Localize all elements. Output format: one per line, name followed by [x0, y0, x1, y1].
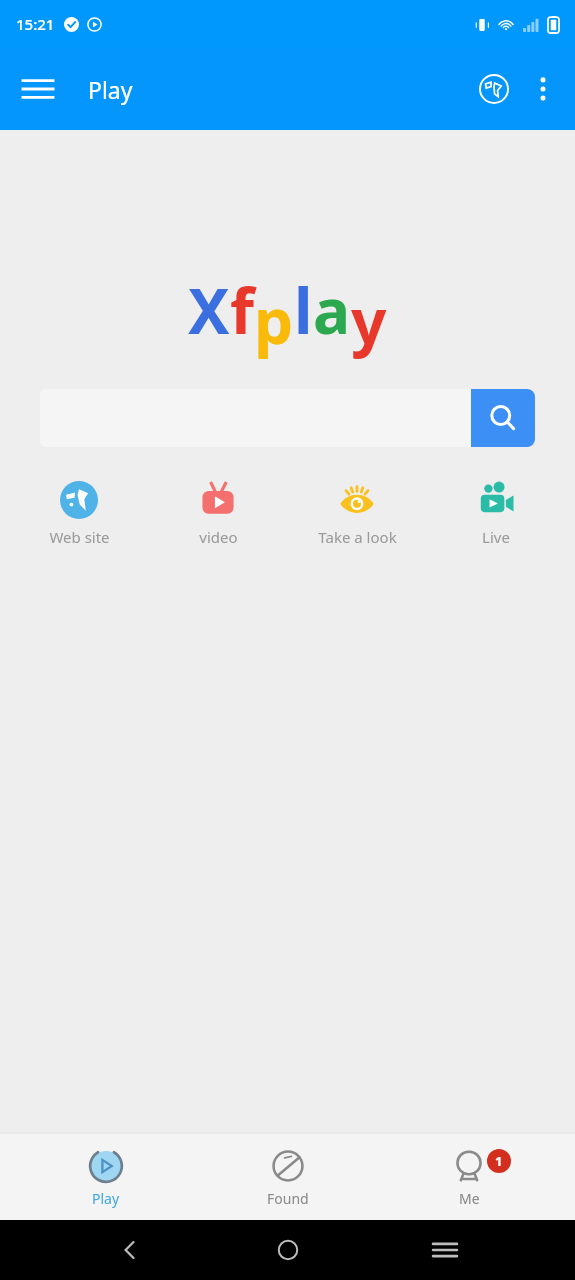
- button[interactable]: Web site: [14, 475, 144, 551]
- button[interactable]: Live: [431, 475, 561, 551]
- button[interactable]: Take a look: [292, 475, 422, 551]
- staticText: Web site: [49, 527, 110, 547]
- button[interactable]: Search: [471, 389, 535, 447]
- staticText: Play: [88, 74, 133, 105]
- staticText: y: [351, 278, 387, 362]
- button[interactable]: video: [153, 475, 283, 551]
- staticText: X: [188, 268, 230, 352]
- button[interactable]: Menu: [10, 61, 66, 117]
- staticText: Found: [267, 1189, 309, 1208]
- staticText: 15:21: [16, 14, 55, 34]
- staticText: a: [313, 268, 351, 352]
- button[interactable]: More options: [519, 65, 567, 113]
- staticText: Play: [92, 1189, 120, 1208]
- staticText: f: [230, 268, 254, 352]
- button[interactable]: Me: [394, 1146, 544, 1208]
- button[interactable]: Found: [213, 1146, 363, 1208]
- staticText: Take a look: [318, 527, 397, 547]
- button[interactable]: Home: [260, 1222, 316, 1278]
- staticText: l: [294, 268, 313, 352]
- staticText: p: [254, 278, 294, 362]
- staticText: Live: [482, 527, 510, 547]
- button[interactable]: Back: [102, 1222, 158, 1278]
- button[interactable]: Recents: [417, 1222, 473, 1278]
- staticText: Me: [459, 1189, 480, 1208]
- button[interactable]: Browser: [469, 64, 519, 114]
- staticText: 1: [495, 1152, 503, 1170]
- button[interactable]: Play: [31, 1146, 181, 1208]
- staticText: video: [199, 527, 238, 547]
